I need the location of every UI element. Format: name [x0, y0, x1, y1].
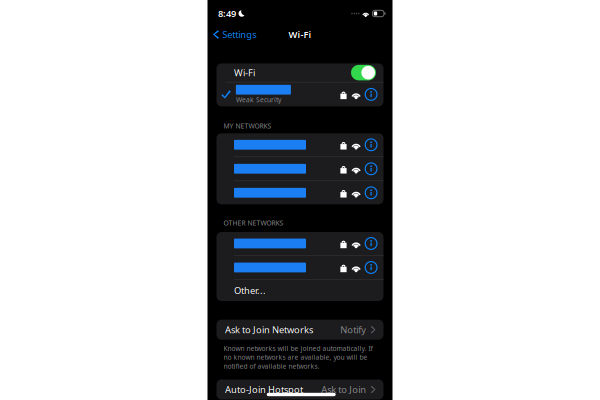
staticText: Wi-Fi — [288, 28, 311, 41]
staticText: Known networks will be joined automatica… — [223, 344, 372, 371]
button[interactable]: Auto-Join Hotspot — [216, 379, 383, 399]
staticText: Settings — [222, 28, 256, 41]
button[interactable]: Other... — [216, 280, 383, 301]
staticText: MY NETWORKS — [223, 122, 271, 130]
staticText: Notify — [340, 323, 366, 336]
staticText: 8:49 — [218, 7, 236, 20]
staticText: Other... — [234, 284, 266, 297]
staticText: Wi-Fi — [234, 66, 255, 79]
button[interactable]: Connected network, Weak Security — [216, 82, 383, 106]
staticText: Ask to Join Networks — [225, 323, 313, 336]
button[interactable]: Wi-Fi network — [216, 133, 383, 157]
staticText: OTHER NETWORKS — [223, 219, 283, 227]
staticText: Auto-Join Hotspot — [225, 383, 303, 396]
button[interactable]: Wi-Fi network — [216, 157, 383, 181]
staticText: Ask to Join — [321, 383, 366, 396]
button[interactable]: Wi-Fi network — [216, 232, 383, 255]
button[interactable]: Settings — [207, 26, 256, 43]
staticText: Weak Security — [236, 95, 281, 104]
button[interactable]: Wi-Fi — [216, 63, 383, 82]
button[interactable]: Ask to Join Networks — [216, 320, 383, 340]
button[interactable]: Wi-Fi network — [216, 181, 383, 205]
button[interactable]: Wi-Fi network — [216, 256, 383, 279]
